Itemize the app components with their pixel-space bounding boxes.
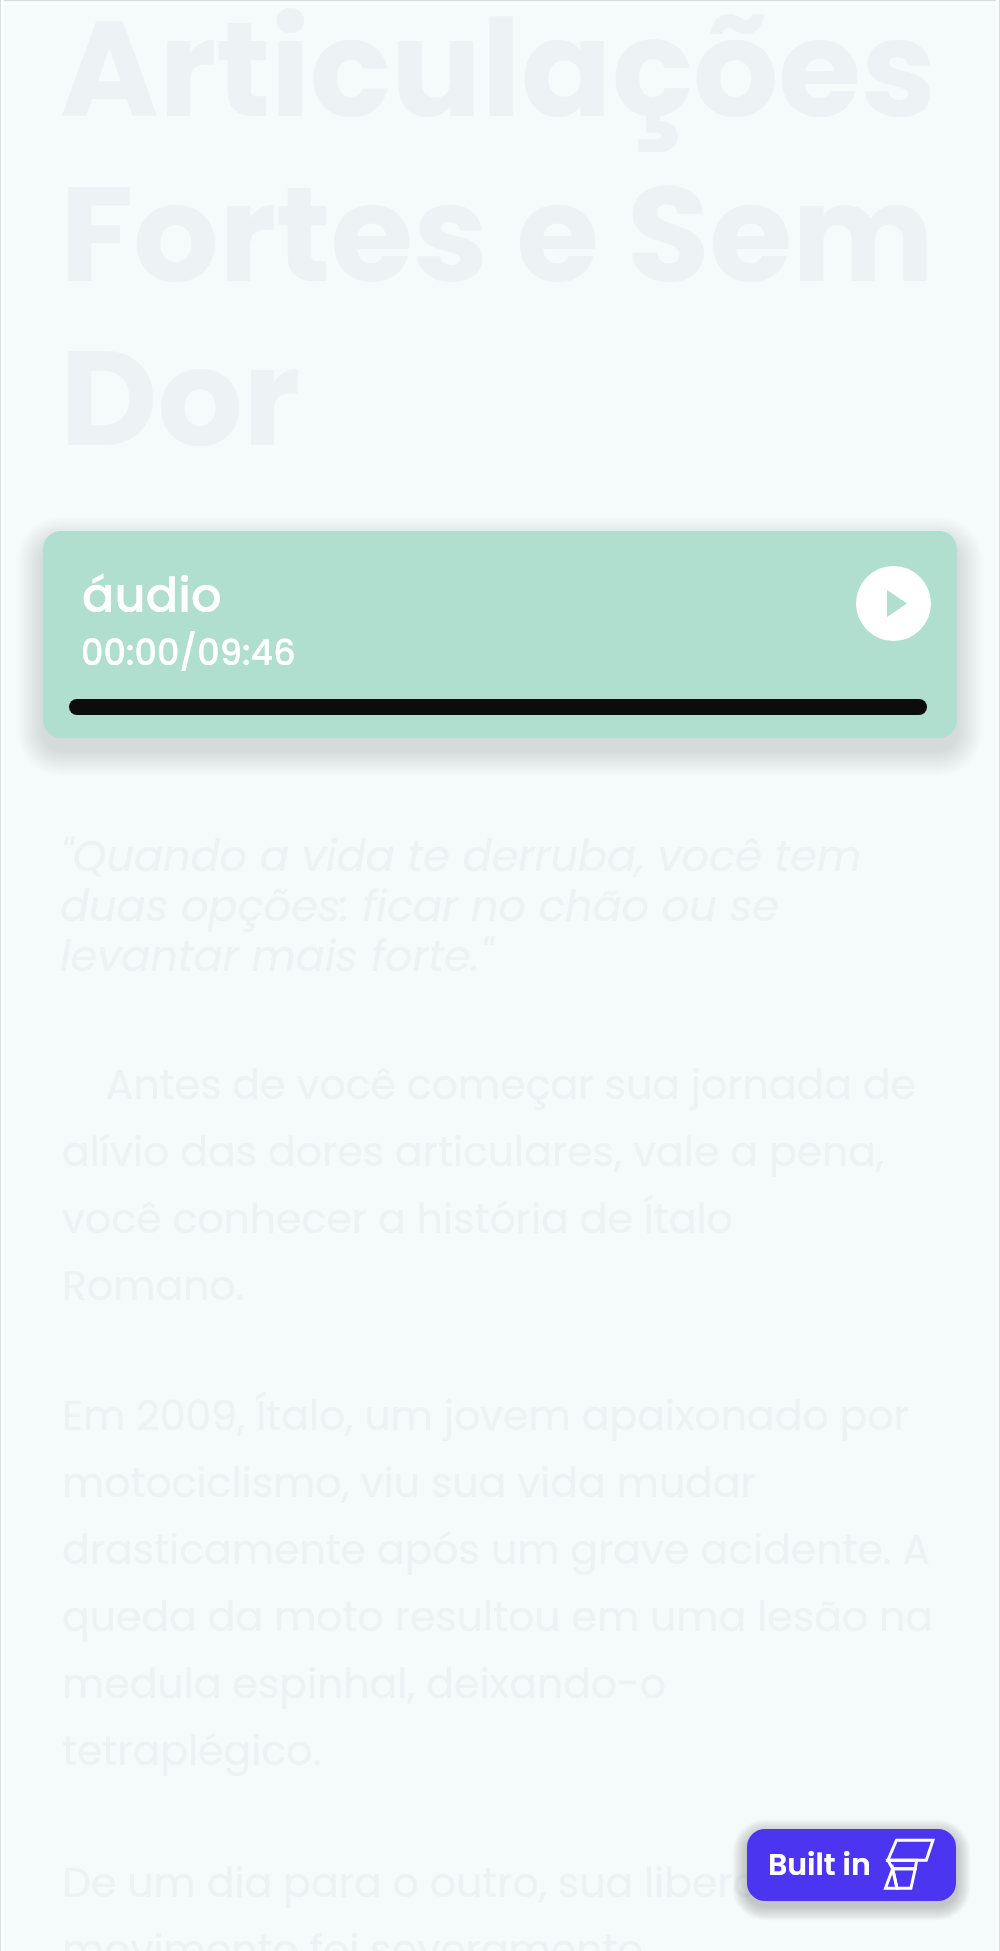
button[interactable]: áudio [43,531,957,738]
button[interactable]: Built in Framer [747,1829,956,1901]
staticText: Built in [768,1844,871,1886]
staticText: Articulações Fortes e Sem Dor [60,0,936,492]
staticText: De um dia para o outro, sua liberdade de… [62,1854,906,1951]
button[interactable]: Play [856,566,931,641]
staticText: 00:00/09:46 [81,628,296,677]
staticText: áudio [82,562,222,629]
